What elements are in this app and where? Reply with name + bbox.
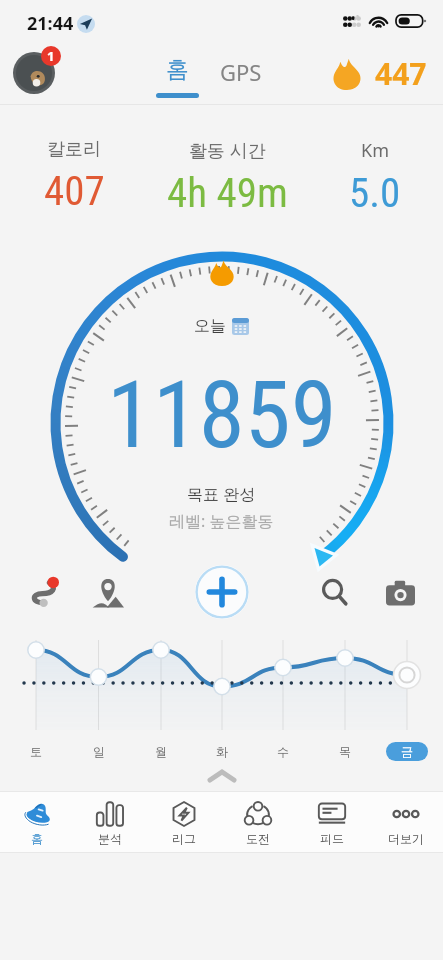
button[interactable]: 활동 시간	[148, 138, 307, 218]
staticText: 11859	[107, 361, 337, 470]
staticText: Km	[361, 138, 389, 163]
staticText: 407	[44, 167, 105, 215]
button[interactable]: 447	[332, 53, 427, 94]
button[interactable]: 목	[331, 740, 359, 762]
button[interactable]: Routes	[19, 569, 67, 617]
staticText: 화	[216, 744, 228, 759]
button[interactable]: 일	[85, 740, 113, 762]
staticText: 447	[375, 53, 427, 94]
button[interactable]: 수	[269, 740, 297, 762]
staticText: 도전	[246, 831, 270, 846]
button[interactable]: 토	[22, 740, 50, 762]
staticText: 월	[155, 744, 167, 759]
staticText: 금	[401, 744, 413, 759]
staticText: 칼로리	[47, 138, 101, 161]
button[interactable]: Search	[311, 569, 359, 617]
button[interactable]: 피드	[295, 791, 369, 852]
staticText: 5.0	[349, 169, 401, 217]
button[interactable]: Profile	[13, 52, 55, 94]
button[interactable]: 월	[147, 740, 175, 762]
button[interactable]: 더보기	[369, 791, 443, 852]
staticText: 토	[30, 744, 42, 759]
button[interactable]: 리그	[147, 791, 221, 852]
staticText: 홈	[166, 55, 189, 84]
staticText: 일	[93, 744, 105, 759]
staticText: 홈	[31, 831, 43, 846]
staticText: 목	[339, 744, 351, 759]
button[interactable]: 분석	[73, 791, 147, 852]
staticText: 목표 완성	[187, 483, 256, 505]
button[interactable]: 금	[386, 742, 428, 761]
button[interactable]: Km	[307, 138, 443, 218]
staticText: 리그	[172, 831, 196, 846]
staticText: 레벨: 높은활동	[169, 510, 274, 532]
staticText: GPS	[220, 57, 262, 87]
button[interactable]: GPS	[212, 53, 270, 91]
button[interactable]: Add	[195, 565, 249, 619]
button[interactable]: 홈	[0, 791, 73, 852]
button[interactable]: Camera	[376, 569, 424, 617]
button[interactable]: 홈	[148, 55, 207, 98]
staticText: 더보기	[388, 831, 424, 846]
button[interactable]: Map	[84, 569, 132, 617]
button[interactable]: 화	[208, 740, 236, 762]
staticText: 수	[277, 744, 289, 759]
staticText: 21:44	[27, 11, 74, 36]
staticText: 피드	[320, 831, 344, 846]
staticText: 1	[47, 47, 55, 65]
staticText: 오늘	[194, 316, 226, 336]
staticText: 활동 시간	[189, 138, 266, 163]
staticText: 분석	[98, 831, 122, 846]
button[interactable]: Expand chart	[205, 767, 239, 785]
staticText: 4h 49m	[167, 169, 288, 217]
button[interactable]: 칼로리	[0, 138, 148, 218]
button[interactable]: 도전	[221, 791, 295, 852]
